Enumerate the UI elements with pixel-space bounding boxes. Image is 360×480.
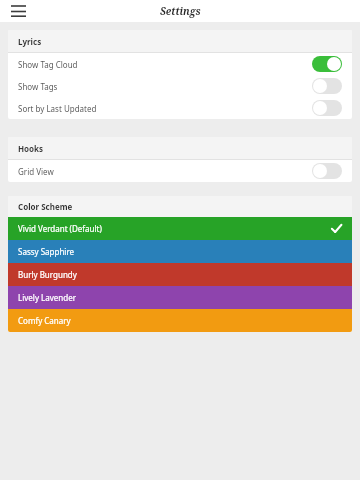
staticText: Show Tag Cloud: [18, 59, 78, 70]
staticText: Comfy Canary: [18, 315, 71, 326]
button[interactable]: Burly Burgundy: [8, 263, 352, 286]
button[interactable]: Sassy Sapphire: [8, 240, 352, 263]
staticText: Hooks: [18, 143, 44, 154]
staticText: Show Tags: [18, 81, 58, 92]
button[interactable]: Off: [312, 163, 342, 179]
button[interactable]: Show Tag Cloud: [8, 53, 352, 75]
staticText: Grid View: [18, 166, 54, 177]
button[interactable]: Lively Lavender: [8, 286, 352, 309]
staticText: Color Scheme: [18, 201, 73, 212]
button[interactable]: Comfy Canary: [8, 309, 352, 332]
button[interactable]: Off: [312, 78, 342, 94]
staticText: Settings: [160, 4, 201, 18]
button[interactable]: Grid View: [8, 160, 352, 182]
staticText: Vivid Verdant (Default): [18, 223, 102, 234]
staticText: Lyrics: [18, 36, 42, 47]
staticText: Lively Lavender: [18, 292, 76, 303]
staticText: Burly Burgundy: [18, 269, 77, 280]
button[interactable]: Off: [312, 100, 342, 116]
button[interactable]: Sort by Last Updated: [8, 97, 352, 119]
button[interactable]: Menu: [6, 1, 30, 21]
button[interactable]: Show Tags: [8, 75, 352, 97]
staticText: Sassy Sapphire: [18, 246, 75, 257]
staticText: Sort by Last Updated: [18, 103, 97, 114]
button[interactable]: On: [312, 56, 342, 72]
button[interactable]: Vivid Verdant (Default): [8, 217, 352, 240]
